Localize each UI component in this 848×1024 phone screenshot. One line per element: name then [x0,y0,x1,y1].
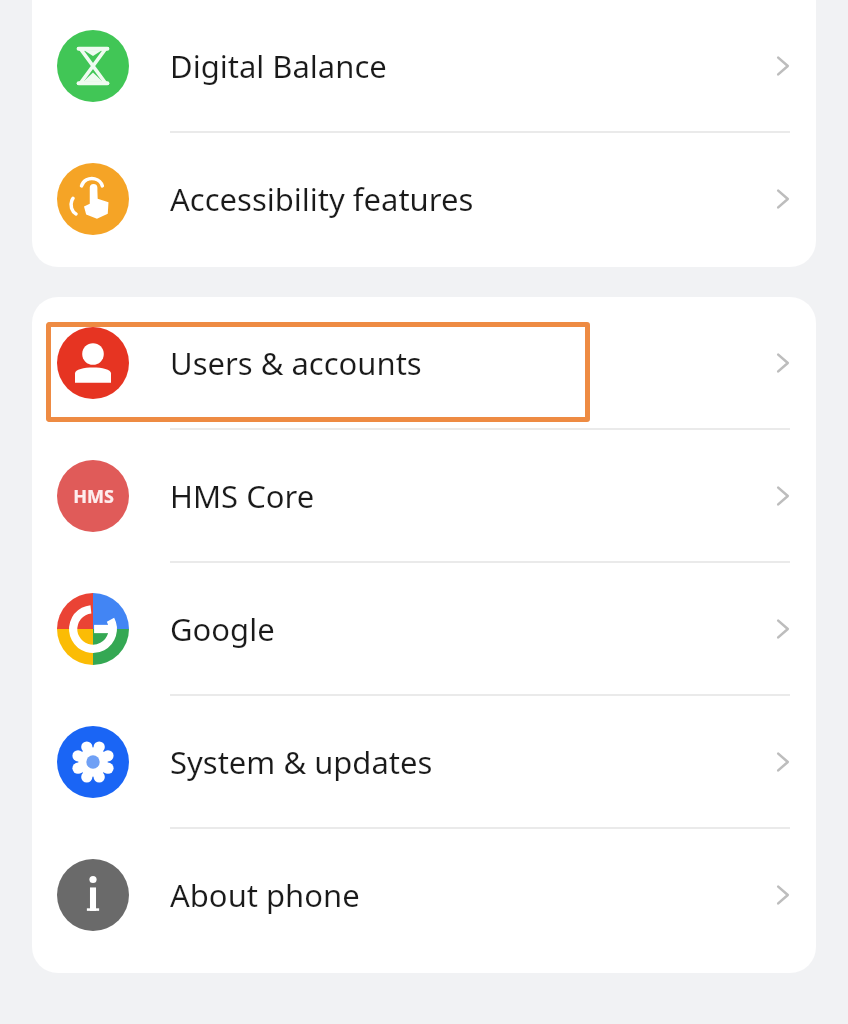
other: Open [768,184,798,214]
button[interactable]: About phone [32,829,816,960]
other: Open [768,614,798,644]
other: Open [768,747,798,777]
staticText: HMS [73,484,114,509]
staticText: Accessibility features [170,178,750,220]
staticText: Google [170,608,750,650]
other: Open [768,880,798,910]
other: Open [768,348,798,378]
button[interactable]: Users & accounts [32,297,816,428]
button[interactable]: HMS [32,430,816,561]
staticText: Users & accounts [170,342,750,384]
button[interactable]: Google [32,563,816,694]
staticText: HMS Core [170,475,750,517]
other: Open [768,481,798,511]
other: Open [768,51,798,81]
staticText: Digital Balance [170,45,750,87]
button[interactable]: Digital Balance [32,0,816,131]
staticText: System & updates [170,741,750,783]
staticText: About phone [170,874,750,916]
button[interactable]: Accessibility features [32,133,816,264]
button[interactable]: System & updates [32,696,816,827]
